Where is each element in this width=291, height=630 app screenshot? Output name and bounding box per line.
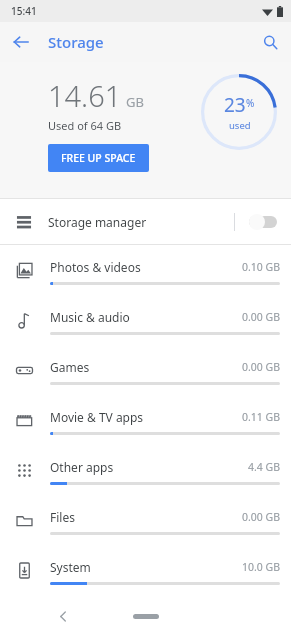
staticText: System bbox=[50, 559, 91, 575]
button[interactable]: System bbox=[0, 545, 291, 595]
button[interactable]: Files bbox=[0, 495, 291, 545]
staticText: 15:41 bbox=[11, 4, 37, 18]
button[interactable]: Movie & TV apps bbox=[0, 395, 291, 445]
staticText: Movie & TV apps bbox=[50, 409, 144, 425]
staticText: % bbox=[246, 96, 255, 110]
staticText: 14.61 bbox=[48, 76, 122, 115]
staticText: Games bbox=[50, 359, 90, 375]
staticText: 0.00 GB bbox=[241, 310, 280, 324]
button[interactable]: Storage manager bbox=[0, 199, 291, 244]
button[interactable]: FREE UP SPACE bbox=[48, 144, 149, 172]
button[interactable]: Storage manager toggle bbox=[249, 214, 277, 230]
button[interactable]: Back bbox=[54, 607, 72, 625]
staticText: 0.10 GB bbox=[241, 260, 280, 274]
button[interactable]: Games bbox=[0, 345, 291, 395]
staticText: Used of 64 GB bbox=[48, 118, 122, 133]
button[interactable]: Back bbox=[9, 30, 33, 54]
button[interactable]: Photos & videos bbox=[0, 245, 291, 295]
staticText: Music & audio bbox=[50, 309, 130, 325]
staticText: Photos & videos bbox=[50, 259, 141, 275]
staticText: Storage bbox=[48, 32, 104, 52]
button[interactable]: Music & audio bbox=[0, 295, 291, 345]
staticText: 0.00 GB bbox=[241, 510, 280, 524]
button[interactable]: Home bbox=[133, 614, 159, 619]
staticText: used bbox=[229, 119, 251, 132]
staticText: Other apps bbox=[50, 459, 114, 475]
button[interactable]: Other apps bbox=[0, 445, 291, 495]
staticText: 0.00 GB bbox=[241, 360, 280, 374]
staticText: Storage manager bbox=[48, 214, 234, 230]
staticText: 4.4 GB bbox=[247, 460, 280, 474]
staticText: 10.0 GB bbox=[241, 560, 280, 574]
staticText: GB bbox=[126, 93, 144, 111]
staticText: 0.11 GB bbox=[241, 410, 280, 424]
button[interactable]: Search bbox=[258, 30, 282, 54]
staticText: 23 bbox=[224, 92, 246, 118]
staticText: FREE UP SPACE bbox=[61, 151, 136, 165]
staticText: Files bbox=[50, 509, 75, 525]
